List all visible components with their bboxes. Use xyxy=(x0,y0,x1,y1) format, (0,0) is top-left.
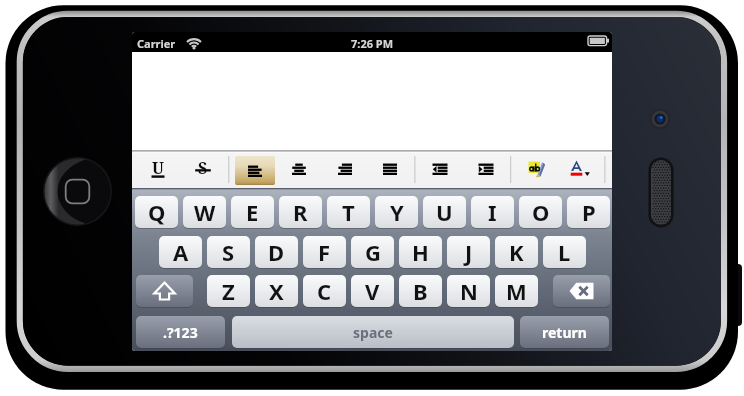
button[interactable]: Y xyxy=(375,196,418,228)
staticText: Y xyxy=(390,197,404,227)
staticText: F xyxy=(318,237,331,267)
button[interactable]: Shift xyxy=(136,275,193,307)
button[interactable]: .?123 xyxy=(136,316,225,348)
staticText: return xyxy=(542,323,587,342)
staticText: X xyxy=(269,276,284,306)
button[interactable]: Highlight colour xyxy=(516,154,556,184)
button[interactable]: I xyxy=(471,196,514,228)
button[interactable]: X xyxy=(255,275,298,307)
button[interactable]: Align right xyxy=(325,154,365,184)
staticText: L xyxy=(558,237,571,267)
button[interactable]: space xyxy=(232,316,514,348)
button[interactable]: V xyxy=(351,275,394,307)
staticText: space xyxy=(353,323,393,342)
button[interactable]: H xyxy=(399,236,442,268)
button[interactable]: G xyxy=(351,236,394,268)
button[interactable]: D xyxy=(255,236,298,268)
button[interactable]: U xyxy=(423,196,466,228)
staticText: W xyxy=(194,197,216,227)
button[interactable]: J xyxy=(447,236,490,268)
staticText: U xyxy=(436,197,453,227)
button[interactable]: Decrease indent xyxy=(420,154,460,184)
staticText: J xyxy=(465,237,473,267)
button[interactable]: W xyxy=(183,196,226,228)
button[interactable]: Justify xyxy=(370,154,410,184)
staticText: O xyxy=(532,197,550,227)
button[interactable]: P xyxy=(567,196,610,228)
button[interactable]: L xyxy=(543,236,586,268)
staticText: T xyxy=(342,197,355,227)
staticText: Carrier xyxy=(137,36,176,51)
button[interactable]: T xyxy=(327,196,370,228)
button[interactable]: N xyxy=(447,275,490,307)
button[interactable]: Underline xyxy=(138,154,178,184)
button[interactable]: Align center xyxy=(279,154,319,184)
button[interactable]: Text colour xyxy=(559,154,599,184)
button[interactable]: Strikethrough xyxy=(183,154,223,184)
button[interactable]: K xyxy=(495,236,538,268)
button[interactable]: Backspace xyxy=(553,275,610,307)
button[interactable]: Z xyxy=(207,275,250,307)
button[interactable]: return xyxy=(520,316,609,348)
staticText: N xyxy=(460,276,478,306)
button[interactable]: E xyxy=(231,196,274,228)
staticText: S xyxy=(222,237,235,267)
staticText: M xyxy=(506,276,527,306)
staticText: U xyxy=(152,157,164,179)
staticText: D xyxy=(268,237,285,267)
staticText: B xyxy=(413,276,428,306)
staticText: A xyxy=(173,237,189,267)
staticText: G xyxy=(365,237,381,267)
staticText: Z xyxy=(222,276,235,306)
staticText: R xyxy=(293,197,308,227)
staticText: Q xyxy=(148,197,166,227)
button[interactable]: O xyxy=(519,196,562,228)
button[interactable]: R xyxy=(279,196,322,228)
staticText: K xyxy=(509,237,524,267)
staticText: I xyxy=(488,197,497,227)
button[interactable]: Increase indent xyxy=(466,154,506,184)
button[interactable]: S xyxy=(207,236,250,268)
staticText: C xyxy=(317,276,332,306)
button[interactable]: C xyxy=(303,275,346,307)
staticText: P xyxy=(582,197,596,227)
staticText: S xyxy=(198,157,208,179)
button[interactable]: A xyxy=(159,236,202,268)
button[interactable]: Q xyxy=(135,196,178,228)
staticText: E xyxy=(246,197,259,227)
button[interactable]: B xyxy=(399,275,442,307)
button[interactable]: Align left xyxy=(235,156,275,185)
button[interactable]: F xyxy=(303,236,346,268)
staticText: V xyxy=(365,276,380,306)
button[interactable]: M xyxy=(495,275,538,307)
staticText: 7:26 PM xyxy=(351,36,394,51)
staticText: H xyxy=(412,237,429,267)
staticText: .?123 xyxy=(163,323,198,342)
